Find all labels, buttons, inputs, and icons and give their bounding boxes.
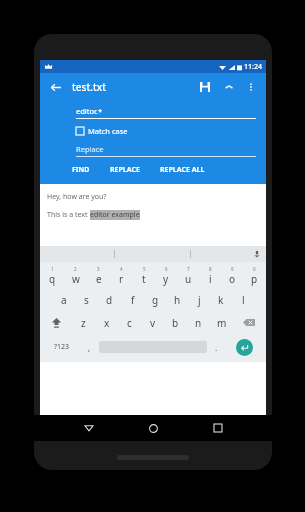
button[interactable]: Back	[46, 78, 64, 96]
staticText: e	[96, 272, 102, 286]
button[interactable]: REPLACE	[108, 163, 142, 177]
button[interactable]: 5	[133, 265, 155, 288]
button[interactable]: f	[121, 288, 144, 311]
button[interactable]: 0	[243, 265, 265, 288]
button[interactable]: Shift	[41, 311, 72, 334]
staticText: This is a text	[47, 210, 90, 220]
staticText: y	[163, 272, 169, 286]
staticText: test.txt	[72, 80, 107, 94]
button[interactable]: Enter	[236, 339, 253, 356]
button[interactable]: 4	[110, 265, 133, 288]
button[interactable]: j	[188, 288, 210, 311]
staticText: 1	[51, 266, 54, 272]
button[interactable]: Match case	[76, 126, 128, 136]
button[interactable]: v	[141, 311, 164, 334]
staticText: j	[198, 293, 201, 307]
button[interactable]: Recents	[208, 418, 228, 438]
staticText: g	[152, 293, 159, 307]
button[interactable]: 3	[87, 265, 110, 288]
staticText: v	[150, 316, 156, 330]
button[interactable]: d	[98, 288, 121, 311]
staticText: ,	[88, 342, 91, 353]
staticText: r	[119, 272, 124, 286]
staticText: f	[131, 293, 135, 307]
staticText: 8	[209, 266, 212, 272]
button[interactable]: 8	[199, 265, 221, 288]
button[interactable]: z	[72, 311, 95, 334]
button[interactable]: s	[75, 288, 98, 311]
button[interactable]: 1	[41, 265, 64, 288]
staticText: s	[84, 293, 89, 307]
staticText: editor example	[90, 210, 140, 220]
button[interactable]: 9	[221, 265, 243, 288]
button[interactable]: b	[164, 311, 187, 334]
button[interactable]: c	[118, 311, 141, 334]
button[interactable]: REPLACE ALL	[158, 163, 207, 177]
staticText: d	[106, 293, 113, 307]
button[interactable]: Backspace	[233, 311, 265, 334]
staticText: editor.*	[76, 106, 103, 116]
button[interactable]: Back	[79, 418, 99, 438]
staticText: n	[195, 316, 202, 330]
button[interactable]: Home	[143, 418, 163, 438]
button[interactable]: ,	[80, 334, 99, 360]
staticText: b	[172, 316, 179, 330]
staticText: t	[142, 272, 146, 286]
button[interactable]: k	[210, 288, 232, 311]
staticText: l	[242, 293, 245, 307]
staticText: x	[104, 316, 110, 330]
staticText: 5	[143, 266, 146, 272]
staticText: u	[185, 272, 192, 286]
button[interactable]: Collapse	[220, 78, 238, 96]
staticText: q	[49, 272, 56, 286]
staticText: Hey, how are you?	[47, 192, 107, 202]
staticText: REPLACE	[110, 165, 140, 175]
button[interactable]: m	[210, 311, 233, 334]
button[interactable]: n	[187, 311, 210, 334]
staticText: .	[215, 342, 218, 353]
button[interactable]: .	[207, 334, 226, 360]
staticText: z	[81, 316, 86, 330]
staticText: 7	[187, 266, 190, 272]
staticText: c	[127, 316, 132, 330]
staticText: m	[217, 316, 227, 330]
button[interactable]: l	[232, 288, 254, 311]
staticText: FIND	[72, 165, 90, 175]
button[interactable]: 2	[64, 265, 87, 288]
staticText: a	[61, 293, 67, 307]
staticText: 9	[231, 266, 234, 272]
staticText: i	[209, 272, 212, 286]
staticText: 6	[165, 266, 168, 272]
staticText: Match case	[88, 126, 128, 136]
staticText: 3	[97, 266, 100, 272]
button[interactable]: 7	[177, 265, 199, 288]
button[interactable]: More options	[242, 78, 260, 96]
button[interactable]: x	[95, 311, 118, 334]
button[interactable]: Save	[196, 78, 214, 96]
staticText: w	[72, 272, 80, 286]
staticText: o	[229, 272, 236, 286]
staticText: ?123	[54, 342, 70, 352]
staticText: k	[218, 293, 224, 307]
staticText: p	[251, 272, 258, 286]
staticText: REPLACE ALL	[160, 165, 205, 175]
staticText: 4	[120, 266, 123, 272]
staticText: Replace	[76, 144, 104, 154]
staticText: 2	[74, 266, 77, 272]
staticText: 11:24	[244, 62, 262, 72]
button[interactable]: FIND	[70, 163, 92, 177]
button[interactable]: g	[144, 288, 166, 311]
staticText: 0	[253, 266, 256, 272]
button[interactable]: h	[166, 288, 188, 311]
button[interactable]: a	[52, 288, 75, 311]
button[interactable]: 6	[155, 265, 177, 288]
staticText: h	[174, 293, 181, 307]
button[interactable]: ?123	[43, 334, 80, 360]
